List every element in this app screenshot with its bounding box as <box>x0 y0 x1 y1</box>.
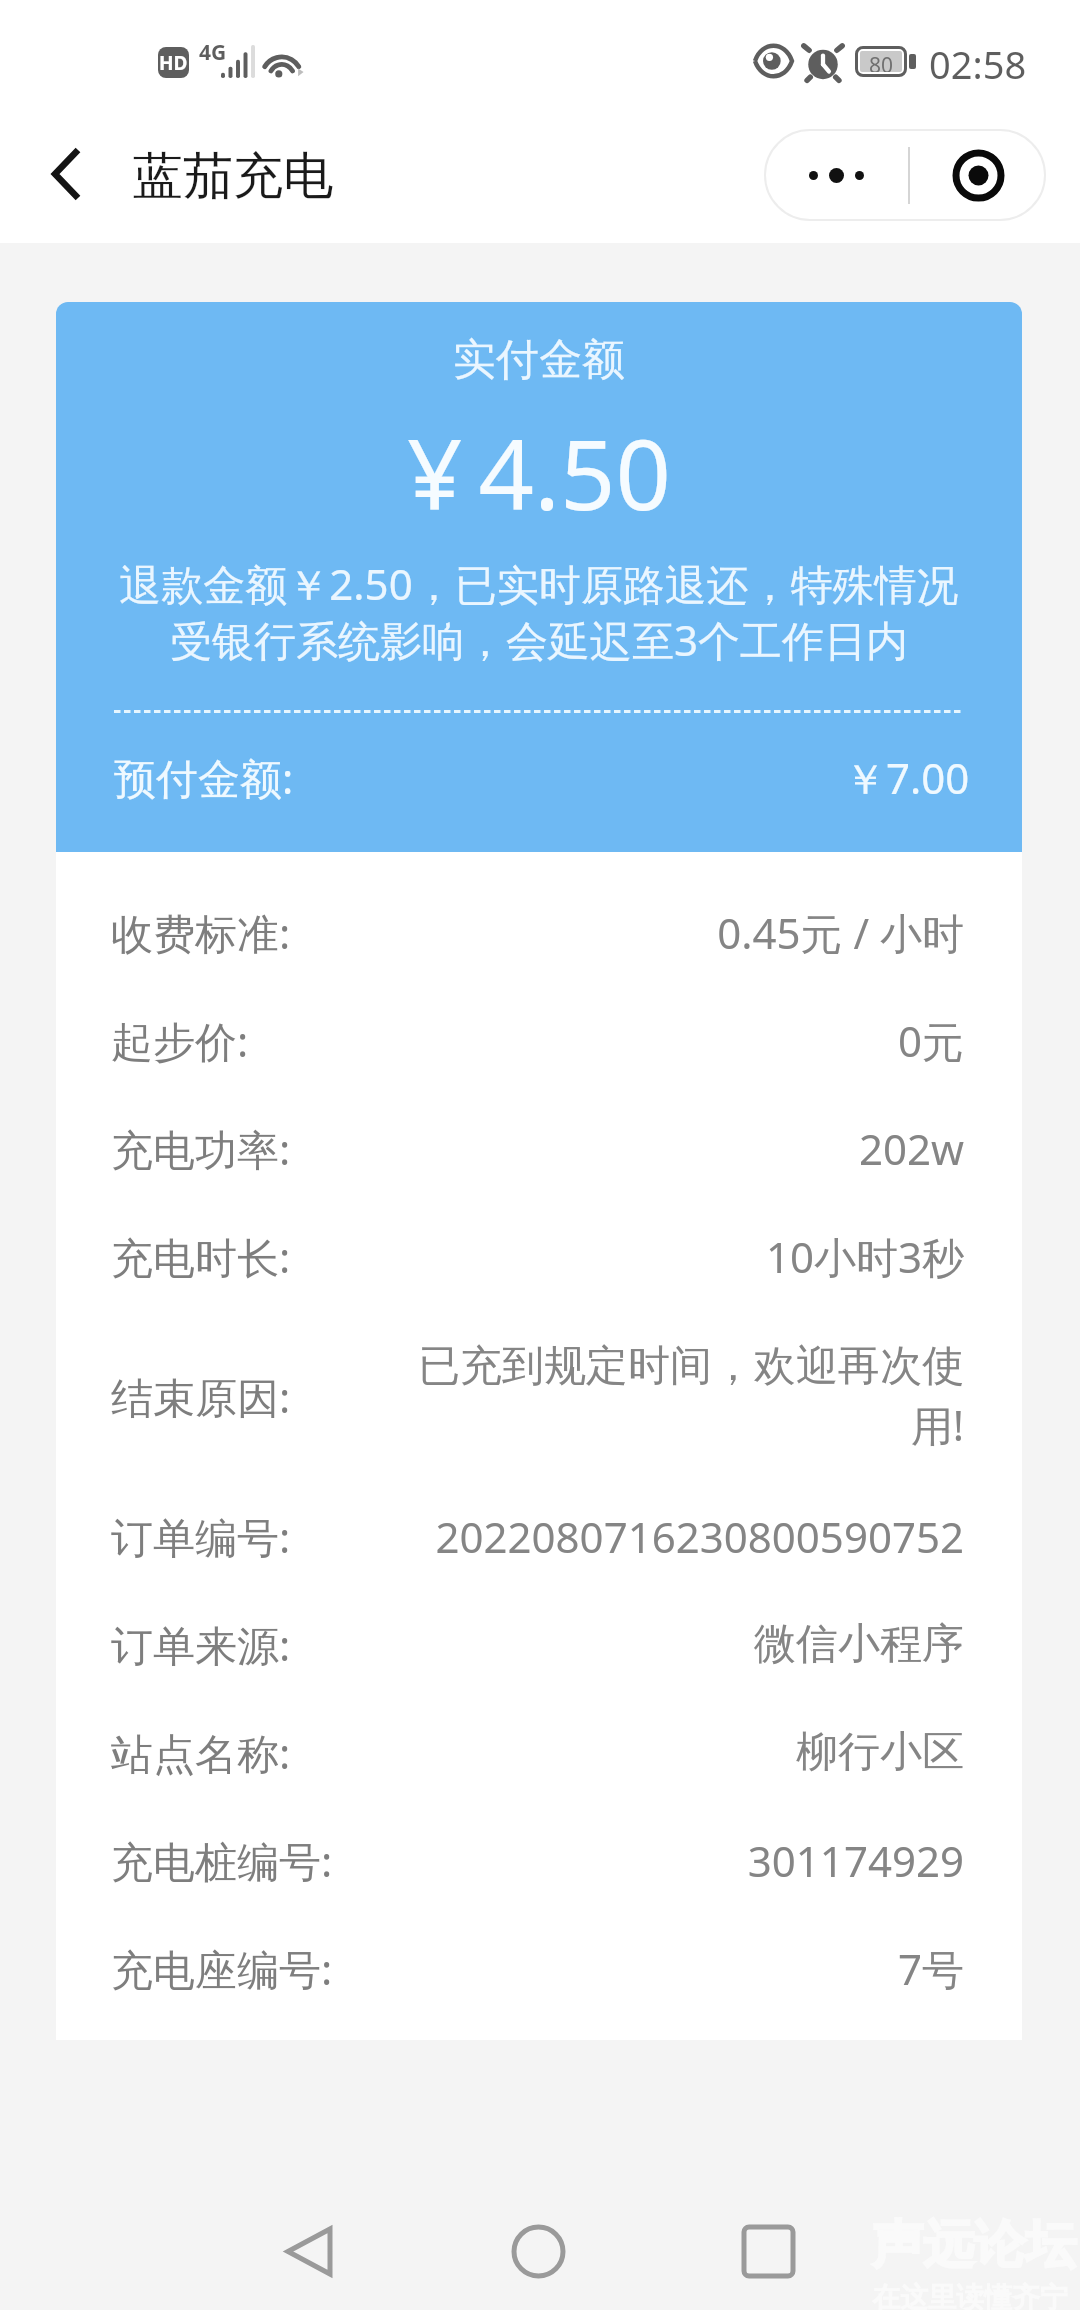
button[interactable]: Close mini program <box>910 129 1046 221</box>
staticText: 退款金额￥2.50，已实时原路退还，特殊情况受银行系统影响，会延迟至3个工作日内 <box>104 555 974 669</box>
button[interactable]: Back <box>16 124 116 224</box>
staticText: 4G <box>199 38 227 67</box>
staticText: 02:58 <box>929 38 1027 90</box>
staticText: 0.45元 / 小时 <box>717 904 964 961</box>
staticText: 结束原因: <box>111 1368 291 1425</box>
button[interactable]: Back <box>249 2191 369 2310</box>
staticText: 实付金额 <box>56 333 1022 387</box>
button[interactable]: More options <box>764 129 908 221</box>
staticText: 充电座编号: <box>111 1940 333 1997</box>
staticText: 蓝茄充电 <box>133 145 333 208</box>
staticText: 站点名称: <box>111 1724 291 1781</box>
staticText: 微信小程序 <box>754 1618 964 1671</box>
staticText: 2022080716230800590752 <box>435 1508 964 1565</box>
staticText: 收费标准: <box>111 904 291 961</box>
staticText: 7号 <box>897 1940 964 1997</box>
staticText: ¥ 4.50 <box>56 406 1022 538</box>
staticText: ￥7.00 <box>844 749 970 806</box>
staticText: HD <box>159 50 188 76</box>
staticText: 301174929 <box>747 1832 964 1889</box>
staticText: 充电时长: <box>111 1228 291 1285</box>
staticText: 订单编号: <box>111 1508 291 1565</box>
staticText: 柳行小区 <box>796 1726 964 1779</box>
staticText: 充电功率: <box>111 1120 291 1177</box>
staticText: 0元 <box>897 1012 964 1069</box>
button[interactable]: Recent apps <box>708 2191 828 2310</box>
staticText: 起步价: <box>111 1012 249 1069</box>
staticText: 10小时3秒 <box>765 1228 964 1285</box>
staticText: 充电桩编号: <box>111 1832 333 1889</box>
staticText: 80 <box>869 51 894 72</box>
staticText: 预付金额: <box>114 749 294 806</box>
staticText: 202w <box>858 1120 964 1177</box>
staticText: 订单来源: <box>111 1616 291 1673</box>
button[interactable]: Home <box>478 2191 598 2310</box>
staticText: 已充到规定时间，欢迎再次使用! <box>404 1340 964 1453</box>
